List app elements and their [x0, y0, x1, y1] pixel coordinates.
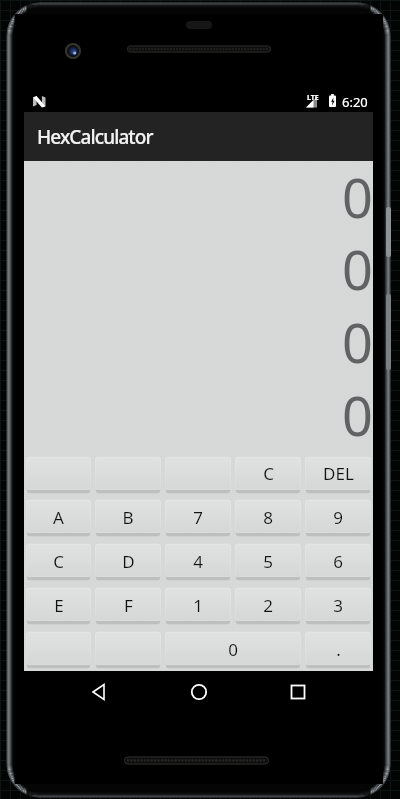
- button[interactable]: Home: [175, 671, 223, 712]
- button[interactable]: 6: [305, 539, 371, 583]
- staticText: .: [336, 638, 341, 661]
- staticText: 5: [263, 550, 273, 573]
- staticText: 6: [333, 550, 343, 573]
- button[interactable]: 2: [235, 583, 301, 627]
- staticText: B: [122, 506, 134, 529]
- staticText: HexCalculator: [37, 124, 153, 150]
- button[interactable]: [26, 452, 91, 495]
- button[interactable]: F: [95, 583, 161, 627]
- button[interactable]: D: [95, 539, 161, 583]
- staticText: 0: [228, 638, 238, 661]
- staticText: 2: [263, 594, 273, 617]
- staticText: 6:20: [342, 93, 368, 111]
- staticText: C: [263, 462, 274, 485]
- staticText: 7: [193, 506, 203, 529]
- staticText: LTE: [307, 93, 319, 103]
- button[interactable]: 9: [305, 495, 371, 539]
- staticText: 0: [342, 232, 373, 305]
- button[interactable]: 5: [235, 539, 301, 583]
- staticText: E: [54, 594, 64, 617]
- staticText: F: [124, 594, 133, 617]
- button[interactable]: E: [26, 583, 91, 627]
- button[interactable]: [165, 452, 231, 495]
- button[interactable]: 1: [165, 583, 231, 627]
- staticText: 1: [193, 594, 203, 617]
- button[interactable]: B: [95, 495, 161, 539]
- button[interactable]: C: [26, 539, 91, 583]
- staticText: 3: [333, 594, 343, 617]
- staticText: D: [122, 550, 135, 573]
- button[interactable]: A: [26, 495, 91, 539]
- button[interactable]: .: [305, 627, 371, 671]
- button[interactable]: [26, 627, 91, 671]
- staticText: C: [53, 550, 64, 573]
- button[interactable]: [95, 627, 161, 671]
- button[interactable]: Recents: [274, 671, 322, 712]
- button[interactable]: [95, 452, 161, 495]
- staticText: 4: [193, 550, 203, 573]
- staticText: 9: [333, 506, 343, 529]
- button[interactable]: HexCalculator: [24, 112, 373, 161]
- button[interactable]: 3: [305, 583, 371, 627]
- staticText: 0: [342, 305, 373, 378]
- button[interactable]: Back: [75, 671, 123, 712]
- button[interactable]: DEL: [305, 452, 371, 495]
- button[interactable]: 8: [235, 495, 301, 539]
- button[interactable]: 7: [165, 495, 231, 539]
- button[interactable]: C: [235, 452, 301, 495]
- staticText: 8: [263, 506, 273, 529]
- button[interactable]: 0: [165, 627, 301, 671]
- staticText: 0: [342, 160, 373, 232]
- button[interactable]: 4: [165, 539, 231, 583]
- staticText: A: [53, 506, 64, 529]
- staticText: DEL: [323, 462, 354, 485]
- staticText: 0: [342, 378, 373, 451]
